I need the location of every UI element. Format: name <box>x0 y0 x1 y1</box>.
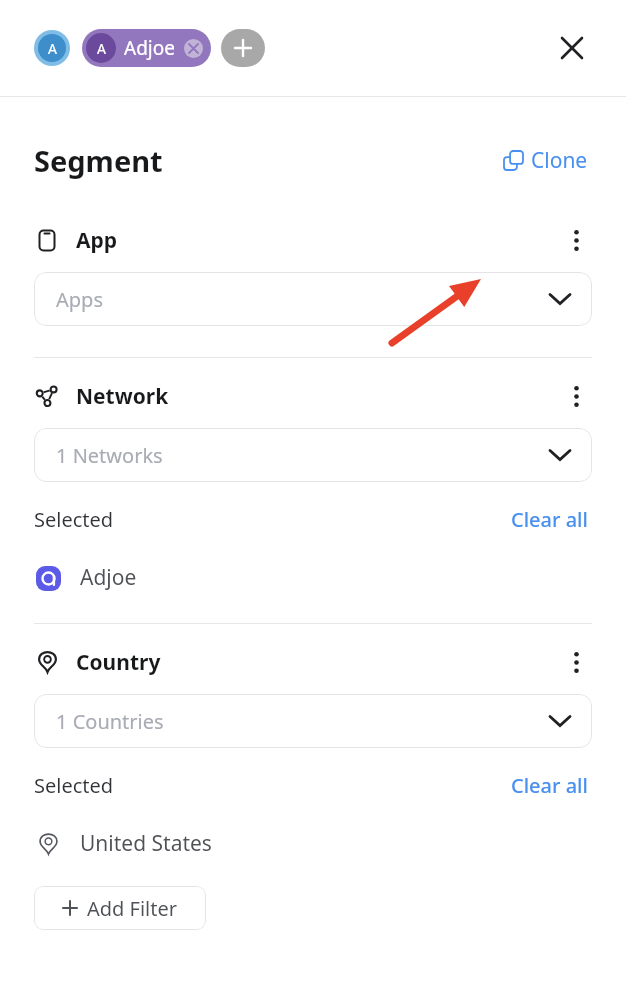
staticText: United States <box>80 829 212 858</box>
staticText: Clear all <box>511 772 588 799</box>
staticText: A <box>48 39 57 58</box>
staticText: Clone <box>531 146 588 175</box>
button[interactable]: Country options <box>560 646 592 678</box>
staticText: Adjoe <box>80 563 137 592</box>
button[interactable]: Adjoe <box>0 559 626 596</box>
staticText: App <box>76 226 118 255</box>
button[interactable]: App options <box>560 224 592 256</box>
button[interactable]: Add Filter <box>34 886 206 930</box>
staticText: Segment <box>34 141 163 180</box>
staticText: Network <box>76 382 169 411</box>
button[interactable]: A <box>82 29 211 67</box>
button[interactable]: Apps <box>34 272 592 326</box>
staticText: Clear all <box>511 506 588 533</box>
staticText: Add Filter <box>87 895 178 922</box>
staticText: Apps <box>56 286 103 313</box>
staticText: Selected <box>34 506 114 533</box>
staticText: 1 Countries <box>56 708 164 735</box>
button[interactable]: Clear all <box>507 502 592 537</box>
button[interactable]: 1 Countries <box>34 694 592 748</box>
staticText: 1 Networks <box>56 442 163 469</box>
staticText: Selected <box>34 772 114 799</box>
button[interactable]: Network options <box>560 380 592 412</box>
button[interactable]: Account A <box>34 30 70 66</box>
button[interactable]: Close <box>554 30 590 66</box>
button[interactable]: Clone <box>500 142 592 179</box>
staticText: Country <box>76 648 161 677</box>
button[interactable]: 1 Networks <box>34 428 592 482</box>
staticText: A <box>97 39 106 58</box>
staticText: Adjoe <box>124 35 175 61</box>
button[interactable]: Add <box>221 29 265 67</box>
button[interactable]: Clear all <box>507 768 592 803</box>
button[interactable]: United States <box>0 825 626 862</box>
button[interactable]: Remove Adjoe <box>184 39 203 58</box>
